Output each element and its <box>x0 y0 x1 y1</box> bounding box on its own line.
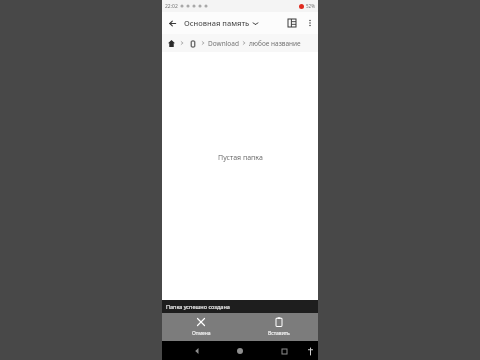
button[interactable]: Назад <box>188 342 206 360</box>
button[interactable]: Download <box>208 39 239 48</box>
button[interactable]: Основная память <box>184 18 258 28</box>
button[interactable]: Клавиатура <box>302 343 318 359</box>
button[interactable]: Вид списка <box>282 13 302 33</box>
button[interactable]: Ещё <box>302 15 318 31</box>
staticText: Основная память <box>184 18 250 28</box>
staticText: Пустая папка <box>218 153 263 163</box>
button[interactable]: Устройство <box>187 38 198 49</box>
button[interactable]: Назад <box>162 13 182 33</box>
button[interactable]: Главная <box>166 38 177 49</box>
button[interactable]: Недавние <box>275 342 293 360</box>
staticText: 52% <box>306 3 315 9</box>
staticText: Вставить <box>268 330 290 337</box>
button[interactable]: Главный экран <box>231 342 249 360</box>
button[interactable]: Вставить <box>240 313 318 341</box>
button[interactable]: любое название <box>249 39 301 48</box>
staticText: 22:02 <box>165 3 178 10</box>
staticText: Отмена <box>192 330 211 337</box>
staticText: Папка успешно создана <box>166 303 230 310</box>
button[interactable]: Отмена <box>162 313 240 341</box>
